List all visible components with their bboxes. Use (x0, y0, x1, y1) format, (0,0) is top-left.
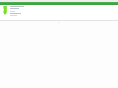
button[interactable] (0, 2, 118, 5)
button[interactable]: Logo (3, 6, 7, 15)
button[interactable] (10, 6, 24, 16)
